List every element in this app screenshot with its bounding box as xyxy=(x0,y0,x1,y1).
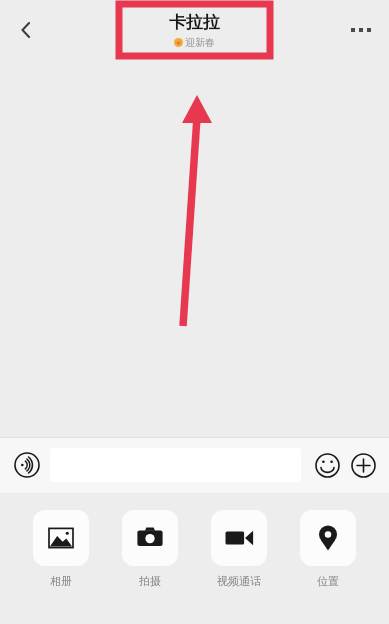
button[interactable]: Emoji xyxy=(309,447,345,483)
button[interactable]: 拍摄 xyxy=(112,510,188,588)
button[interactable]: 卡拉拉 xyxy=(169,12,220,49)
button[interactable]: 视频通话 xyxy=(201,510,277,588)
button[interactable]: Back xyxy=(4,8,48,52)
button[interactable]: Voice input xyxy=(8,446,46,484)
button[interactable]: More functions xyxy=(345,447,381,483)
staticText: 视频通话 xyxy=(217,574,261,588)
staticText: 拍摄 xyxy=(139,574,161,588)
button[interactable]: 相册 xyxy=(23,510,99,588)
button[interactable]: 位置 xyxy=(290,510,366,588)
staticText: 相册 xyxy=(50,574,72,588)
staticText: 迎新春 xyxy=(185,36,215,49)
staticText: 卡拉拉 xyxy=(169,12,220,33)
button[interactable]: More options xyxy=(339,8,383,52)
staticText: 位置 xyxy=(317,574,339,588)
